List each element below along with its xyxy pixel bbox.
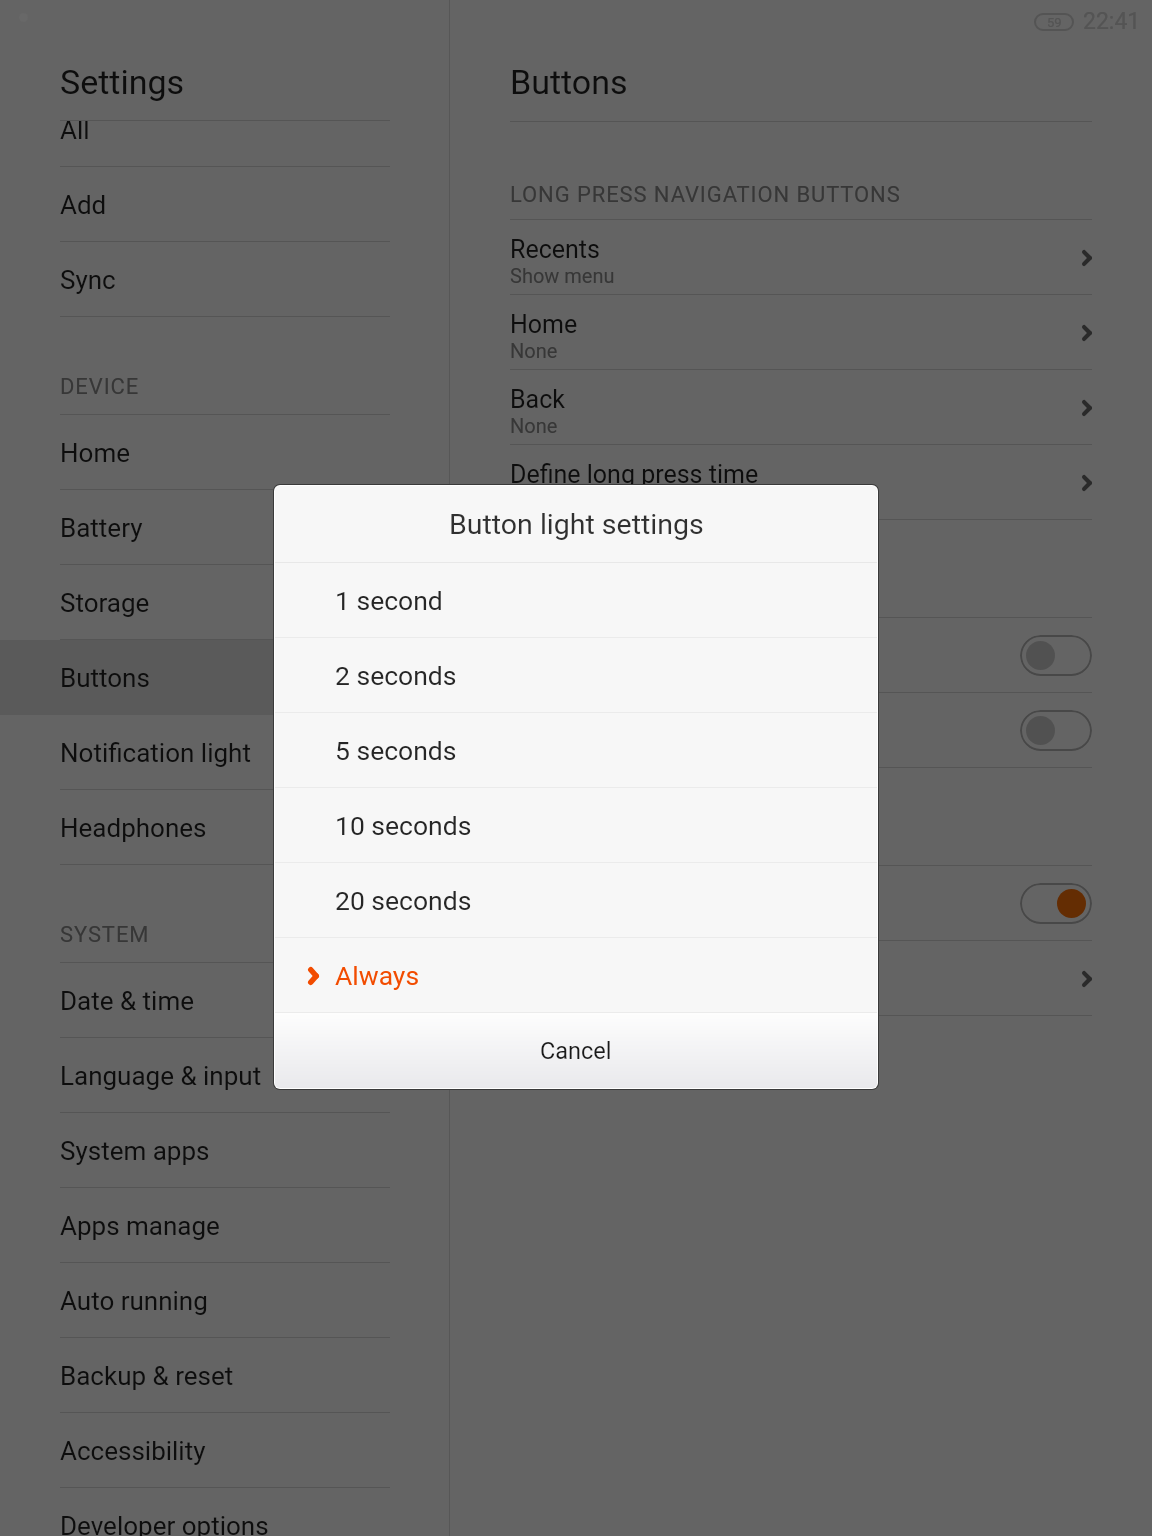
staticText: SYSTEM	[60, 922, 150, 948]
button[interactable]: Button light	[450, 618, 1152, 693]
button[interactable]: Home	[450, 295, 1152, 370]
button[interactable]: Date & time	[0, 963, 450, 1038]
button[interactable]: 10 seconds	[275, 788, 877, 863]
button[interactable]: 2 seconds	[275, 638, 877, 713]
staticText: 5 seconds	[335, 735, 457, 766]
staticText: Home	[60, 438, 130, 468]
button[interactable]: Define long press time	[450, 445, 1152, 520]
staticText: Home	[510, 310, 578, 339]
staticText: Show menu	[510, 264, 615, 287]
staticText: System apps	[60, 1136, 210, 1166]
button[interactable]: Toggle	[1020, 635, 1092, 676]
staticText: Accessibility	[60, 1436, 206, 1466]
button[interactable]: Toggle	[1020, 710, 1092, 751]
staticText: 10 seconds	[335, 810, 472, 841]
staticText: 22:41	[1083, 8, 1141, 35]
button[interactable]: Button light settings	[450, 941, 1152, 1016]
other: Battery	[1034, 13, 1074, 31]
staticText: Headphones	[60, 813, 207, 843]
staticText: Sync	[60, 265, 116, 295]
staticText: Always	[335, 960, 420, 991]
staticText: Notification light	[60, 738, 251, 768]
button[interactable]: 20 seconds	[275, 863, 877, 938]
button[interactable]: All	[0, 92, 450, 167]
staticText: LONG PRESS NAVIGATION BUTTONS	[510, 182, 901, 208]
button[interactable]: Accessibility	[0, 1413, 450, 1488]
staticText: Cancel	[540, 1037, 612, 1065]
staticText: Battery	[60, 513, 143, 543]
button[interactable]: Sync	[0, 242, 450, 317]
button[interactable]: Language & input	[0, 1038, 450, 1113]
button[interactable]: Headphones	[0, 790, 450, 865]
staticText: Auto running	[60, 1286, 208, 1316]
staticText: Developer options	[60, 1511, 269, 1536]
staticText: None	[510, 339, 558, 362]
staticText: Backup & reset	[60, 1361, 234, 1391]
button[interactable]: Apps manage	[0, 1188, 450, 1263]
button[interactable]: Toggle	[1020, 883, 1092, 924]
button[interactable]: Home	[0, 415, 450, 490]
staticText: Buttons	[60, 663, 150, 693]
button[interactable]: 1 second	[275, 563, 877, 638]
button[interactable]: Battery	[0, 490, 450, 565]
staticText: Date & time	[60, 986, 194, 1016]
staticText: None	[510, 414, 558, 437]
staticText: DEVICE	[60, 374, 140, 400]
staticText: Button light settings	[449, 508, 704, 541]
button[interactable]: System apps	[0, 1113, 450, 1188]
staticText: Storage	[60, 588, 150, 618]
staticText: All	[60, 115, 90, 145]
button[interactable]: Back	[450, 370, 1152, 445]
button[interactable]: Notification light	[0, 715, 450, 790]
staticText: 59	[1047, 15, 1062, 30]
button[interactable]: Touch light	[450, 693, 1152, 768]
staticText: Settings	[60, 62, 185, 102]
button[interactable]: Auto running	[0, 1263, 450, 1338]
button[interactable]: Buttons	[0, 640, 450, 715]
button[interactable]: Cancel	[275, 1013, 877, 1088]
button[interactable]: Always	[275, 938, 877, 1013]
staticText: Add	[60, 190, 107, 220]
staticText: Buttons	[510, 62, 628, 102]
button[interactable]: Recents	[450, 220, 1152, 295]
staticText: Apps manage	[60, 1211, 220, 1241]
staticText: Define long press time	[510, 460, 759, 489]
button[interactable]: Backup & reset	[0, 1338, 450, 1413]
button[interactable]: Developer options	[0, 1488, 450, 1536]
staticText: 1 second	[335, 585, 443, 616]
staticText: Back	[510, 385, 565, 414]
button[interactable]: Swap buttons	[450, 866, 1152, 941]
staticText: 2 seconds	[335, 660, 457, 691]
staticText: Language & input	[60, 1061, 262, 1091]
button[interactable]: Storage	[0, 565, 450, 640]
staticText: Recents	[510, 235, 600, 264]
button[interactable]: Add	[0, 167, 450, 242]
staticText: 20 seconds	[335, 885, 472, 916]
button[interactable]: 5 seconds	[275, 713, 877, 788]
